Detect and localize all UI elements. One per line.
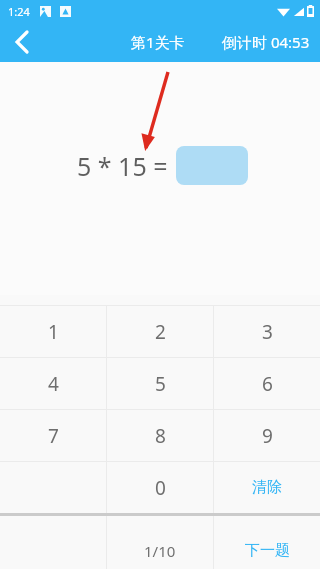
button[interactable]: 7 <box>0 410 106 461</box>
staticText: 清除 <box>252 478 282 497</box>
button[interactable]: 8 <box>107 410 213 461</box>
staticText: 5 <box>155 371 166 397</box>
staticText: 倒计时 04:53 <box>222 32 310 52</box>
button[interactable]: 3 <box>214 306 320 357</box>
button[interactable]: 1/10 <box>107 516 213 569</box>
staticText: 0 <box>155 475 166 501</box>
staticText: 1:24 <box>8 4 30 19</box>
button[interactable]: Answer input <box>176 146 248 185</box>
staticText: 第1关卡 <box>131 32 185 52</box>
button[interactable]: 下一题 <box>214 516 320 569</box>
staticText: 1/10 <box>144 541 176 561</box>
staticText: 5 * 15 = <box>77 149 168 183</box>
staticText: 6 <box>262 371 273 397</box>
staticText: 4 <box>48 371 59 397</box>
button[interactable]: 5 <box>107 358 213 409</box>
button[interactable]: 清除 <box>214 462 320 513</box>
button[interactable]: 6 <box>214 358 320 409</box>
button[interactable]: 2 <box>107 306 213 357</box>
button[interactable]: 4 <box>0 358 106 409</box>
staticText: 7 <box>48 423 59 449</box>
staticText: 下一题 <box>245 541 290 560</box>
staticText: 8 <box>155 423 166 449</box>
button[interactable]: 0 <box>107 462 213 513</box>
button[interactable]: Back <box>0 22 44 62</box>
staticText: 9 <box>262 423 273 449</box>
staticText: 2 <box>155 319 166 345</box>
button[interactable]: 9 <box>214 410 320 461</box>
staticText: 3 <box>262 319 273 345</box>
staticText: 1 <box>48 319 59 345</box>
button[interactable]: 1 <box>0 306 106 357</box>
